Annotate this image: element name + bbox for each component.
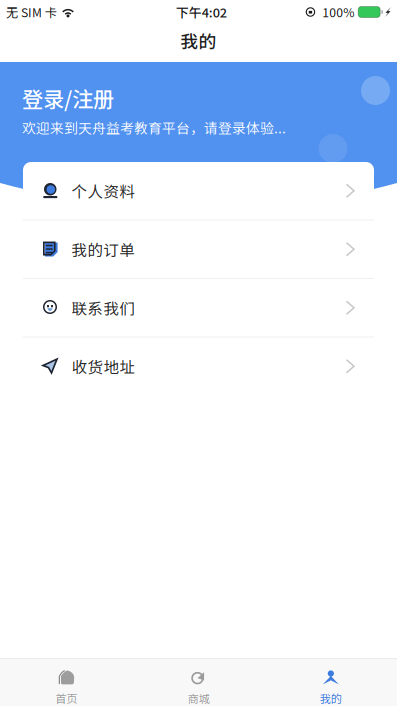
staticText: 商城 [187,690,209,706]
staticText: 下午4:02 [176,3,227,21]
button[interactable]: 商城 [132,659,265,706]
staticText: 欢迎来到天舟益考教育平台，请登录体验... [22,117,286,137]
staticText: 收货地址 [72,355,136,377]
button[interactable]: 个人资料 [23,162,374,219]
staticText: 联系我们 [72,296,136,319]
staticText: 100% [322,3,354,21]
staticText: 无 SIM 卡 [6,3,57,21]
staticText: 我的订单 [72,238,136,260]
staticText: 个人资料 [72,179,136,202]
button[interactable]: 我的订单 [23,220,374,278]
button[interactable]: 首页 [0,659,132,706]
staticText: 我的 [180,28,216,53]
staticText: 登录/注册 [22,82,114,113]
staticText: 我的 [320,690,342,706]
button[interactable]: 联系我们 [23,279,374,336]
button[interactable]: 我的 [265,659,397,706]
button[interactable]: 收货地址 [23,337,374,395]
staticText: 首页 [55,690,77,706]
